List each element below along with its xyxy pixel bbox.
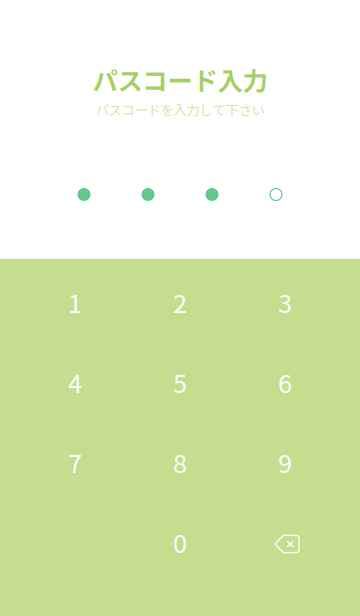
button[interactable]: 3 bbox=[232, 262, 337, 342]
staticText: パスコードを入力して下さい bbox=[95, 100, 264, 119]
button[interactable]: 4 bbox=[22, 342, 127, 422]
button[interactable]: 6 bbox=[232, 342, 337, 422]
staticText: 3 bbox=[278, 284, 292, 320]
button[interactable]: 7 bbox=[22, 422, 127, 502]
button[interactable]: 2 bbox=[127, 262, 232, 342]
button[interactable]: 9 bbox=[232, 422, 337, 502]
staticText: 4 bbox=[68, 364, 82, 400]
staticText: 8 bbox=[173, 444, 187, 480]
button[interactable]: 0 bbox=[127, 502, 232, 582]
staticText: パスコード入力 bbox=[92, 61, 267, 98]
staticText: 1 bbox=[68, 284, 82, 320]
button[interactable]: 5 bbox=[127, 342, 232, 422]
staticText: 5 bbox=[173, 364, 187, 400]
staticText: 9 bbox=[278, 444, 292, 480]
button[interactable]: 8 bbox=[127, 422, 232, 502]
button[interactable]: Delete bbox=[232, 502, 337, 582]
staticText: 0 bbox=[173, 524, 187, 560]
button[interactable]: 1 bbox=[22, 262, 127, 342]
staticText: 7 bbox=[68, 444, 82, 480]
staticText: 2 bbox=[173, 284, 187, 320]
staticText: 6 bbox=[278, 364, 292, 400]
